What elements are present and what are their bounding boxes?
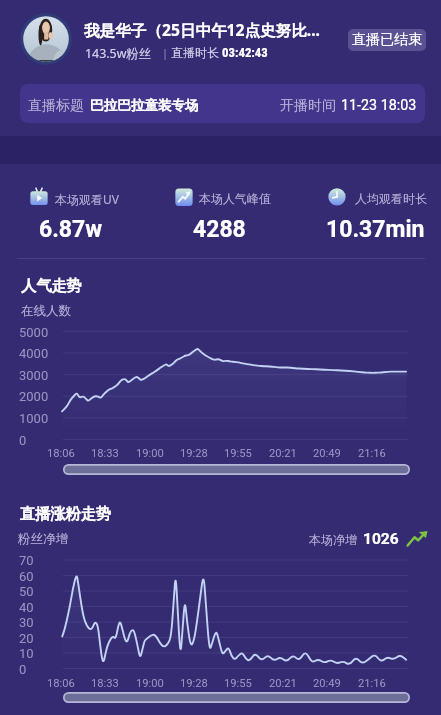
staticText: 在线人数 (21, 303, 71, 319)
staticText: 21:16 (358, 677, 386, 690)
staticText: 21:16 (358, 447, 386, 460)
staticText: 本场人气峰值 (199, 191, 271, 206)
staticText: 我是华子（25日中午12点史努比... (84, 19, 320, 40)
button[interactable]: Chart time range scrollbar (63, 464, 410, 475)
staticText: 143.5w粉丝 (85, 45, 152, 62)
staticText: 20:21 (269, 447, 297, 460)
staticText: 20:49 (313, 677, 341, 690)
staticText: 19:00 (136, 677, 164, 690)
staticText: 10.37min (326, 216, 425, 243)
staticText: 5000 (19, 325, 49, 340)
staticText: 70 (19, 553, 34, 568)
staticText: 18:06 (47, 677, 75, 690)
staticText: 直播涨粉走势 (20, 504, 112, 523)
staticText: 19:55 (224, 677, 252, 690)
staticText: 6.87w (39, 216, 103, 243)
staticText: 4000 (19, 346, 49, 361)
staticText: 本场净增 (309, 532, 357, 547)
staticText: 20:21 (269, 677, 297, 690)
staticText: 直播时长 (171, 45, 219, 60)
staticText: 60 (19, 569, 34, 584)
staticText: 粉丝净增 (18, 531, 69, 547)
staticText: 巴拉巴拉童装专场 (90, 97, 199, 114)
staticText: 18:06 (47, 447, 75, 460)
staticText: 0 (19, 662, 27, 677)
staticText: 1000 (19, 411, 49, 426)
staticText: 40 (19, 600, 34, 615)
staticText: 0 (19, 433, 27, 448)
staticText: 1026 (363, 530, 399, 548)
staticText: 直播已结束 (352, 31, 422, 49)
staticText: 30 (19, 615, 34, 630)
staticText: 4288 (193, 216, 246, 243)
staticText: 3000 (19, 368, 49, 383)
staticText: 19:28 (180, 447, 208, 460)
other: Trending up (407, 531, 428, 546)
staticText: 开播时间 (280, 97, 336, 115)
staticText: 19:28 (180, 677, 208, 690)
staticText: 2000 (19, 389, 49, 404)
button[interactable]: Chart time range scrollbar (63, 692, 410, 703)
button[interactable] (24, 183, 143, 241)
staticText: 18:33 (91, 677, 119, 690)
staticText: | (162, 45, 169, 60)
staticText: 本场观看UV (55, 191, 119, 207)
staticText: 20:49 (313, 447, 341, 460)
button[interactable]: Streamer avatar (20, 13, 72, 65)
staticText: 03:42:43 (222, 45, 268, 60)
staticText: 10 (19, 646, 34, 661)
staticText: 20 (19, 631, 34, 646)
staticText: 19:00 (136, 447, 164, 460)
staticText: 人均观看时长 (355, 191, 427, 206)
button[interactable] (322, 183, 429, 241)
staticText: 人气走势 (21, 276, 82, 295)
staticText: 18:33 (91, 447, 119, 460)
button[interactable]: 直播已结束 (348, 29, 426, 51)
button[interactable] (169, 183, 297, 241)
staticText: 50 (19, 584, 34, 599)
staticText: 11-23 18:03 (341, 97, 417, 114)
staticText: 19:55 (224, 447, 252, 460)
button[interactable] (20, 84, 425, 123)
staticText: 直播标题 (28, 97, 84, 115)
